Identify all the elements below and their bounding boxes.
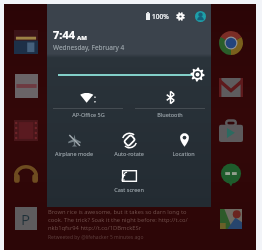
staticText: AP-Office 5G [72, 111, 105, 118]
staticText: Auto-rotate [114, 150, 144, 157]
staticText: Wednesday, February 4 [53, 43, 125, 52]
staticText: Cast screen [114, 186, 144, 193]
button[interactable]: Bluetooth [129, 88, 211, 126]
button[interactable]: User account [195, 11, 206, 22]
staticText: nkb1qfsr94 http://t.co/1DBmckESr [48, 224, 142, 232]
button[interactable]: Settings [176, 12, 185, 21]
staticText: Bluetooth [157, 111, 183, 118]
button[interactable] [219, 75, 243, 99]
button[interactable] [219, 119, 243, 143]
button[interactable] [14, 118, 38, 142]
button[interactable] [14, 162, 38, 186]
button[interactable] [219, 31, 243, 55]
staticText: P [21, 209, 31, 229]
button[interactable] [219, 163, 243, 187]
staticText: 7:44 [53, 27, 75, 42]
button[interactable]: AP-Office 5G [47, 88, 129, 126]
button[interactable] [14, 74, 38, 98]
button[interactable]: P [14, 206, 38, 230]
staticText: 100% [152, 12, 169, 21]
staticText: cook. The trick? Soak it the night befor… [48, 216, 188, 224]
button[interactable]: Location [156, 131, 211, 169]
button[interactable]: Cast screen [101, 167, 156, 205]
button[interactable]: Brightness [51, 67, 207, 83]
staticText: Airplane mode [55, 150, 93, 157]
staticText: Brown rice is awesome, but it takes so d… [48, 208, 187, 216]
staticText: AM [77, 34, 87, 42]
button[interactable]: Airplane mode [47, 131, 101, 169]
button[interactable] [14, 30, 38, 54]
staticText: Retweeted by @lifehacker 5 minutes ago [48, 234, 144, 241]
button[interactable] [219, 207, 243, 231]
staticText: Location [172, 150, 195, 157]
button[interactable]: Auto-rotate [101, 131, 156, 169]
